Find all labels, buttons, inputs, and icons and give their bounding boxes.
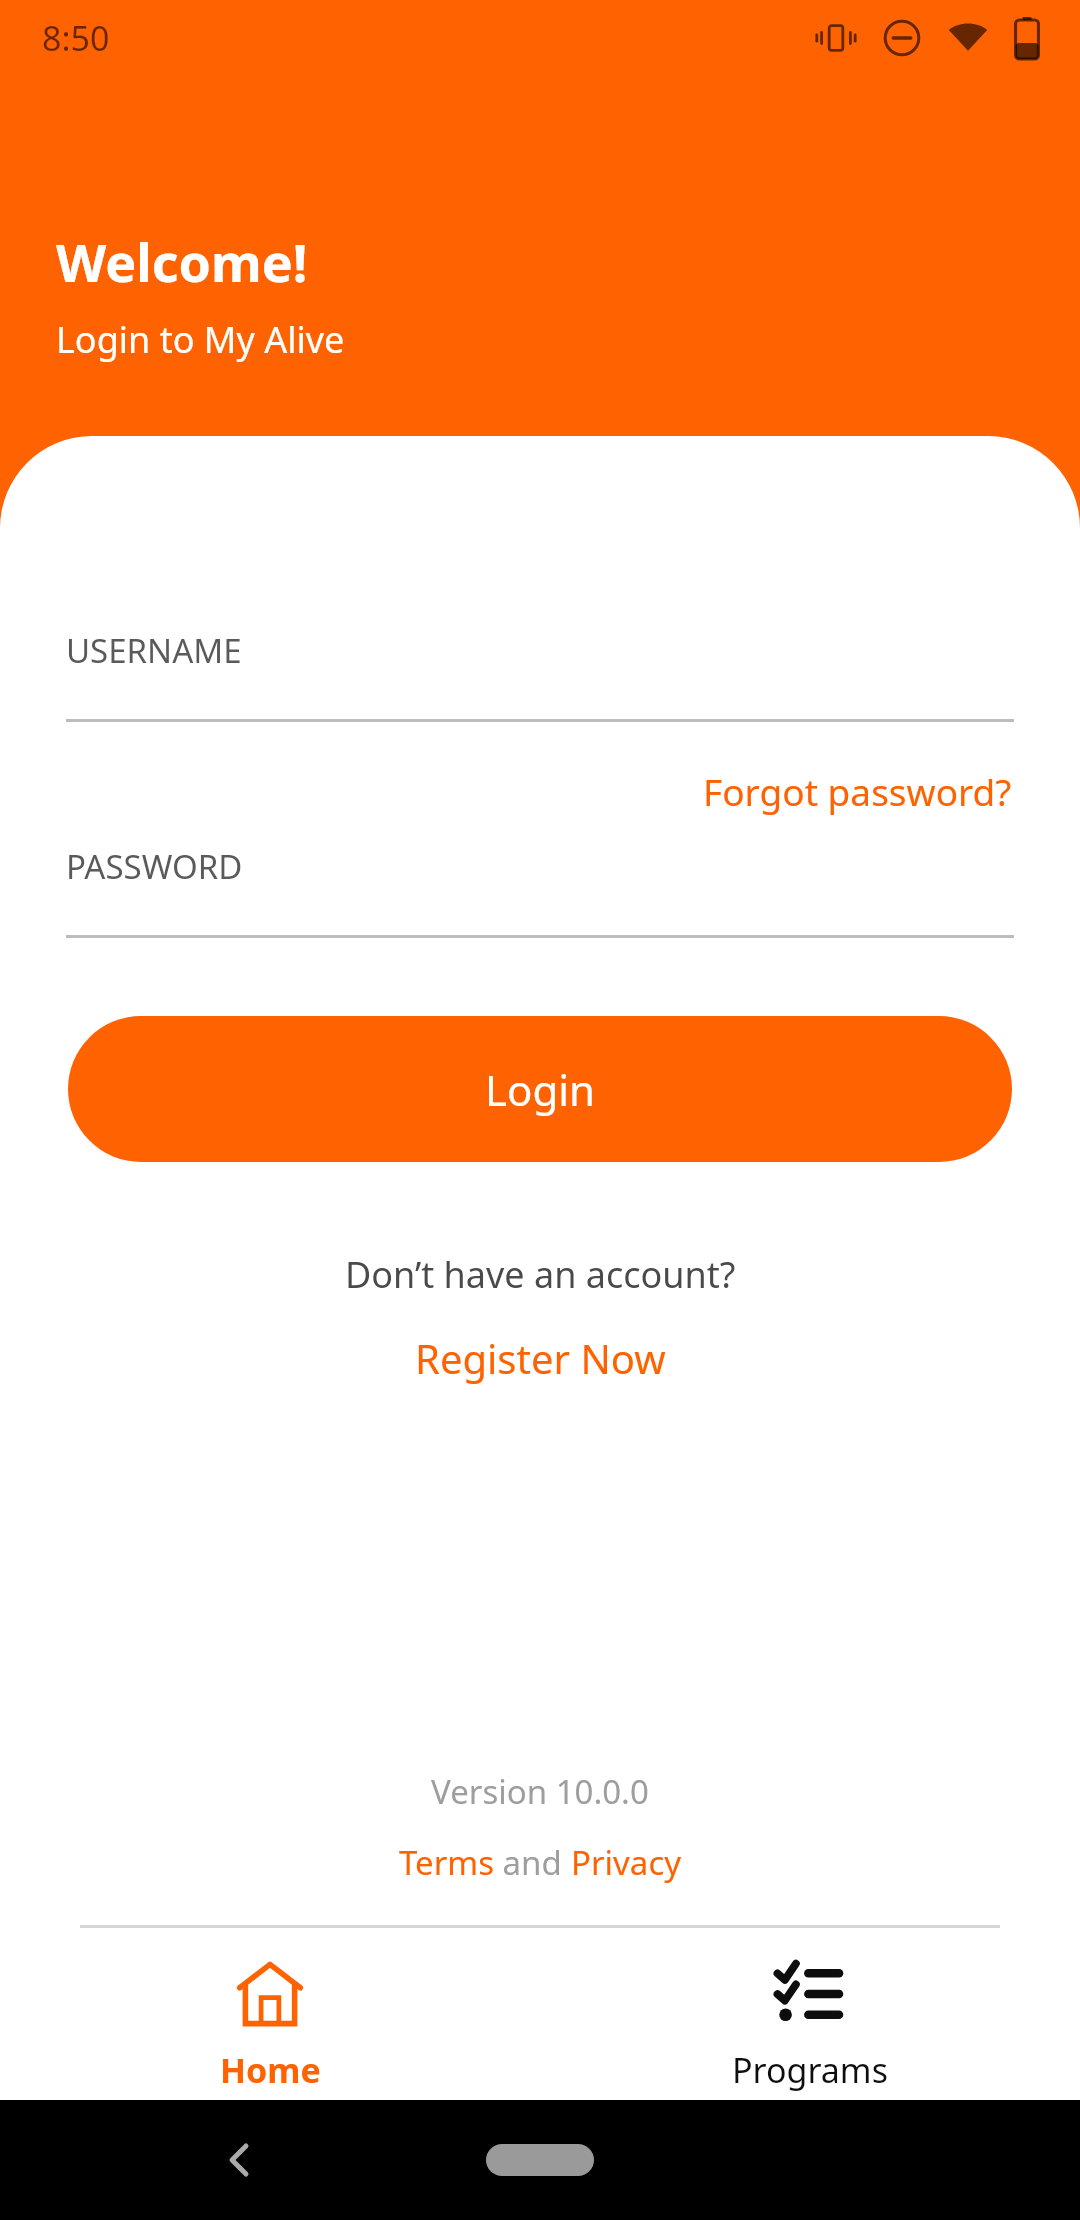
button[interactable]: Terms <box>399 1840 494 1885</box>
other: Home gesture <box>486 2144 594 2176</box>
staticText: Forgot password? <box>703 766 1012 816</box>
staticText: Welcome! <box>56 226 308 297</box>
button[interactable]: Programs <box>540 1925 1080 2100</box>
button[interactable]: Forgot password? <box>697 760 1018 822</box>
staticText: Login to My Alive <box>56 315 345 364</box>
button[interactable]: Home <box>0 1925 540 2100</box>
staticText: 8:50 <box>42 15 110 61</box>
staticText: Version 10.0.0 <box>431 1769 649 1814</box>
staticText: Programs <box>732 2047 888 2093</box>
staticText: Privacy <box>571 1840 682 1885</box>
button[interactable]: USERNAME <box>66 628 1014 722</box>
staticText: Register Now <box>415 1331 666 1385</box>
staticText: Home <box>220 2047 321 2093</box>
staticText: PASSWORD <box>66 844 243 889</box>
staticText: and <box>494 1840 571 1885</box>
button[interactable]: PASSWORD <box>66 844 1014 938</box>
button[interactable]: Register Now <box>405 1327 676 1389</box>
button[interactable]: Privacy <box>571 1840 682 1885</box>
other: Back <box>215 2135 265 2185</box>
staticText: Login <box>485 1061 596 1118</box>
button[interactable]: Login <box>68 1016 1012 1162</box>
staticText: Terms <box>399 1840 494 1885</box>
staticText: USERNAME <box>66 628 242 673</box>
other: Programs <box>773 1957 847 2031</box>
other: Home <box>233 1957 307 2031</box>
staticText: Don’t have an account? <box>345 1250 736 1299</box>
